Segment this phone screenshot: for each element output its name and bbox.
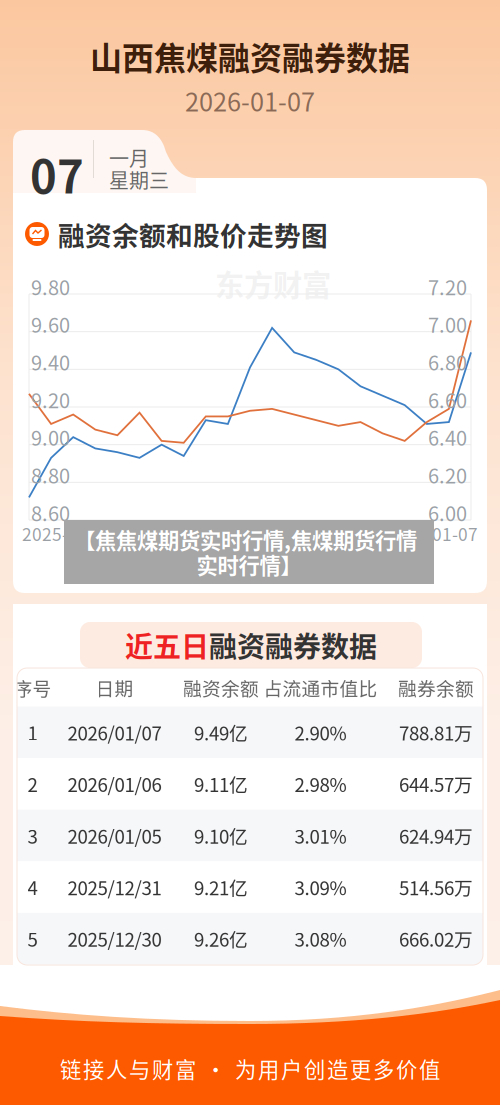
staticText: 2025/12/30 [67, 925, 161, 952]
staticText: 序号 [13, 674, 51, 701]
staticText: 2 [27, 770, 37, 797]
staticText: 644.57万 [399, 770, 473, 797]
staticText: 6.20 [428, 460, 467, 489]
staticText: 4 [27, 874, 37, 901]
staticText: 7.20 [428, 272, 467, 301]
button[interactable]: 1 [17, 706, 483, 758]
button[interactable]: 3 [17, 810, 483, 861]
staticText: 融券余额 [398, 674, 474, 701]
staticText: 514.56万 [399, 874, 473, 901]
staticText: 2.98% [294, 770, 346, 797]
staticText: 6.00 [428, 498, 467, 527]
staticText: 7.00 [428, 310, 467, 339]
button[interactable]: 4 [17, 861, 483, 913]
staticText: 2026-01-07 [386, 521, 478, 546]
staticText: 星期三 [109, 165, 169, 194]
staticText: 9.21亿 [194, 874, 248, 901]
staticText: 3.01% [294, 822, 346, 849]
staticText: 3.08% [294, 925, 346, 952]
staticText: 8.60 [31, 498, 70, 527]
button[interactable]: 2 [17, 758, 483, 810]
staticText: 07 [30, 141, 84, 207]
staticText: 2025-12-08 [22, 521, 114, 546]
staticText: 6.40 [428, 423, 467, 452]
staticText: 9.60 [31, 310, 70, 339]
staticText: 9.40 [31, 347, 70, 376]
staticText: 9.26亿 [194, 925, 248, 952]
staticText: 9.10亿 [194, 822, 248, 849]
staticText: 1 [27, 719, 37, 746]
staticText: 实时行情】 [196, 549, 301, 580]
staticText: 666.02万 [399, 925, 473, 952]
staticText: 3.09% [294, 874, 346, 901]
staticText: 9.80 [31, 272, 70, 301]
button[interactable]: 5 [17, 913, 483, 964]
staticText: 2026/01/07 [67, 719, 161, 746]
staticText: 5 [27, 925, 37, 952]
staticText: 9.11亿 [194, 770, 248, 797]
staticText: 3 [27, 822, 37, 849]
staticText: 日期 [95, 674, 133, 701]
staticText: 624.94万 [399, 822, 473, 849]
staticText: 融资余额（亿） [145, 552, 257, 575]
staticText: 融资融券数据 [209, 625, 377, 665]
staticText: 一月 [109, 143, 149, 172]
staticText: 2.90% [294, 719, 346, 746]
staticText: 6.60 [428, 385, 467, 414]
staticText: 788.81万 [399, 719, 473, 746]
staticText: 9.49亿 [194, 719, 248, 746]
staticText: 2026/01/05 [67, 822, 161, 849]
staticText: 山西焦煤融资融券数据 [90, 33, 410, 79]
staticText: 近五日 [125, 625, 209, 665]
staticText: 9.00 [31, 423, 70, 452]
staticText: 【焦焦煤期货实时行情,焦煤期货行情 [74, 524, 417, 555]
staticText: 东方财富 [215, 262, 331, 304]
staticText: 2025/12/31 [67, 874, 161, 901]
staticText: 融资余额和股价走势图 [58, 215, 328, 253]
staticText: 融资余额 [183, 674, 259, 701]
staticText: 8.80 [31, 460, 70, 489]
staticText: 2026-01-07 [185, 82, 315, 119]
staticText: 6.80 [428, 347, 467, 376]
staticText: 链接人与财富 · 为用户创造更多价值 [60, 1053, 440, 1084]
staticText: 9.20 [31, 385, 70, 414]
staticText: 2026/01/06 [67, 770, 161, 797]
staticText: 占流通市值比 [263, 674, 377, 701]
